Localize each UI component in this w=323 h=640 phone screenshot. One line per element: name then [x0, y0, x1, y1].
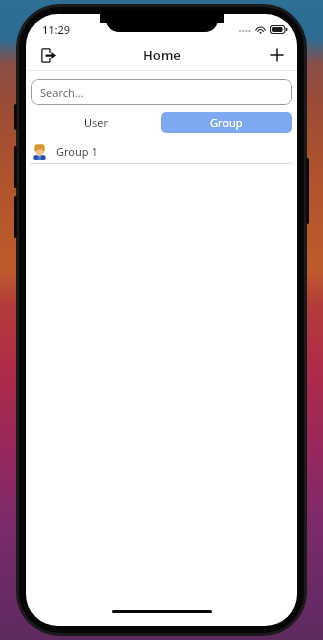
button[interactable]: Group [161, 112, 292, 133]
staticText: Group [210, 115, 243, 130]
staticText: Group 1 [56, 144, 98, 159]
button[interactable]: Search... [31, 79, 292, 105]
button[interactable]: Group 1 [26, 139, 297, 163]
button[interactable]: Log out [34, 41, 62, 69]
staticText: Home [143, 46, 181, 64]
button[interactable]: User [31, 112, 161, 133]
staticText: Search... [40, 85, 84, 100]
staticText: 11:29 [42, 22, 71, 37]
button[interactable]: Add [263, 41, 291, 69]
staticText: User [84, 115, 109, 130]
